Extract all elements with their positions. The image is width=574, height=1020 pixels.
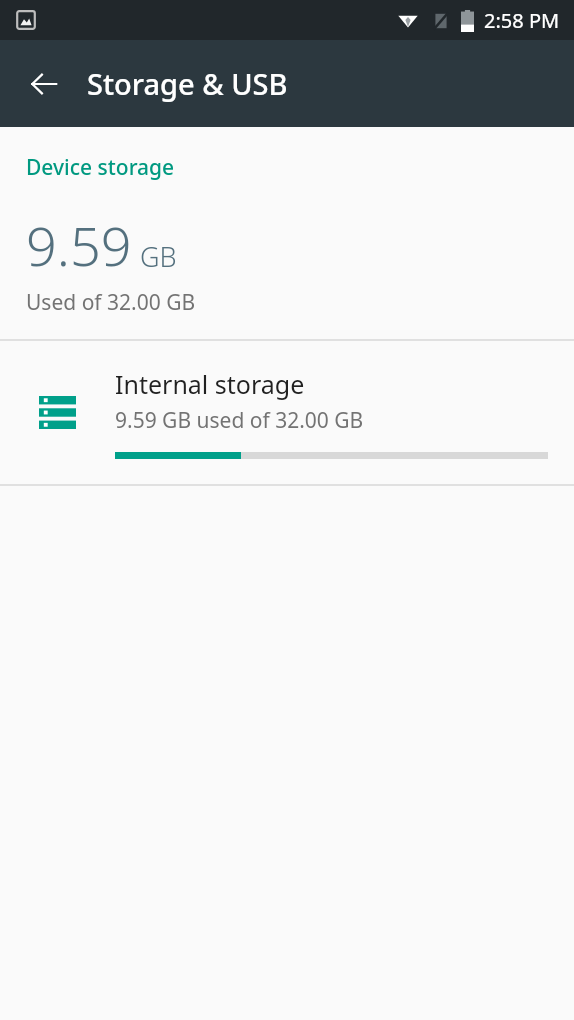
button[interactable]: Back — [16, 56, 72, 112]
staticText: 9.59 GB used of 32.00 GB — [115, 406, 364, 435]
button[interactable]: Internal storage — [0, 341, 574, 484]
staticText: Device storage — [26, 153, 175, 182]
staticText: 9.59 — [26, 208, 132, 282]
staticText: GB — [140, 238, 177, 275]
staticText: Used of 32.00 GB — [26, 288, 196, 317]
staticText: Storage & USB — [87, 64, 288, 103]
staticText: 2:58 PM — [484, 7, 560, 34]
staticText: Internal storage — [115, 367, 305, 401]
